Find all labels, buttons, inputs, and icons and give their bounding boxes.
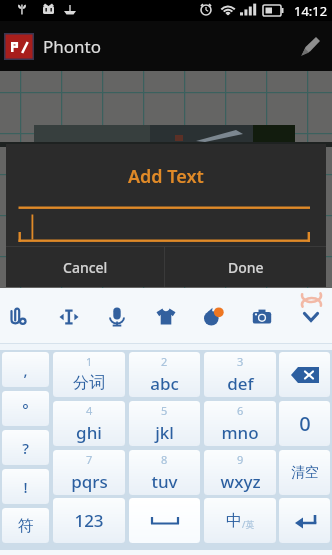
button[interactable]: ? xyxy=(2,430,49,465)
staticText: 8 xyxy=(161,452,168,467)
button[interactable]: 123 xyxy=(53,498,125,543)
staticText: 3 xyxy=(237,354,244,369)
staticText: 5 xyxy=(161,403,168,418)
staticText: ° xyxy=(22,399,29,419)
button[interactable]: Backspace xyxy=(279,352,330,397)
staticText: 清空 xyxy=(291,464,319,482)
staticText: , xyxy=(23,360,28,380)
staticText: 中 xyxy=(226,511,242,531)
staticText: 6 xyxy=(237,403,244,418)
button[interactable]: Done xyxy=(166,247,326,287)
staticText: pqrs xyxy=(71,470,108,493)
button[interactable]: ° xyxy=(2,391,49,426)
button[interactable]: 9 xyxy=(204,450,276,495)
button[interactable]: Edit text xyxy=(286,23,332,69)
button[interactable]: 中 xyxy=(204,498,276,543)
staticText: 符 xyxy=(18,516,34,536)
button[interactable]: Cancel xyxy=(6,247,165,287)
button[interactable]: Voice input xyxy=(100,301,134,333)
staticText: Phonto xyxy=(43,35,102,58)
button[interactable]: 符 xyxy=(2,508,49,543)
staticText: 4 xyxy=(86,403,93,418)
button[interactable]: 0 xyxy=(279,401,330,446)
button[interactable]: 清空 xyxy=(279,450,330,495)
button[interactable]: 2 xyxy=(129,352,200,397)
button[interactable]: Camera xyxy=(245,301,279,333)
button[interactable]: , xyxy=(2,352,49,387)
button[interactable]: Themes xyxy=(149,301,183,333)
staticText: /英 xyxy=(242,518,255,530)
staticText: tuv xyxy=(151,470,178,493)
staticText: ? xyxy=(22,438,29,458)
button[interactable]: Insert attachment xyxy=(1,301,35,333)
button[interactable]: 5 xyxy=(129,401,200,446)
staticText: ! xyxy=(23,477,28,497)
staticText: ghi xyxy=(76,421,102,444)
staticText: mno xyxy=(221,421,259,444)
staticText: 分词 xyxy=(73,373,105,393)
staticText: 0 xyxy=(299,410,311,437)
staticText: wxyz xyxy=(220,470,261,493)
staticText: 123 xyxy=(74,509,104,532)
button[interactable]: Hide keyboard xyxy=(294,301,328,333)
staticText: Add Text xyxy=(128,164,204,189)
staticText: 2 xyxy=(161,354,168,369)
button[interactable]: 4 xyxy=(53,401,125,446)
staticText: 9 xyxy=(237,452,244,467)
button[interactable]: ! xyxy=(2,469,49,504)
staticText: def xyxy=(227,372,254,395)
button[interactable]: 8 xyxy=(129,450,200,495)
button[interactable]: 7 xyxy=(53,450,125,495)
staticText: 7 xyxy=(86,452,93,467)
button[interactable]: 1 xyxy=(53,352,125,397)
button[interactable]: Emoji xyxy=(196,301,230,333)
button[interactable]: 6 xyxy=(204,401,276,446)
button[interactable]: Space xyxy=(129,498,200,543)
button[interactable]: Enter xyxy=(279,498,330,543)
button[interactable]: 3 xyxy=(204,352,276,397)
staticText: 1 xyxy=(86,354,93,369)
button[interactable]: Move cursor xyxy=(52,301,86,333)
staticText: 14:12 xyxy=(294,2,328,20)
staticText: Done xyxy=(228,258,264,277)
staticText: jkl xyxy=(155,421,174,444)
staticText: abc xyxy=(150,372,179,395)
staticText: Cancel xyxy=(63,258,108,277)
